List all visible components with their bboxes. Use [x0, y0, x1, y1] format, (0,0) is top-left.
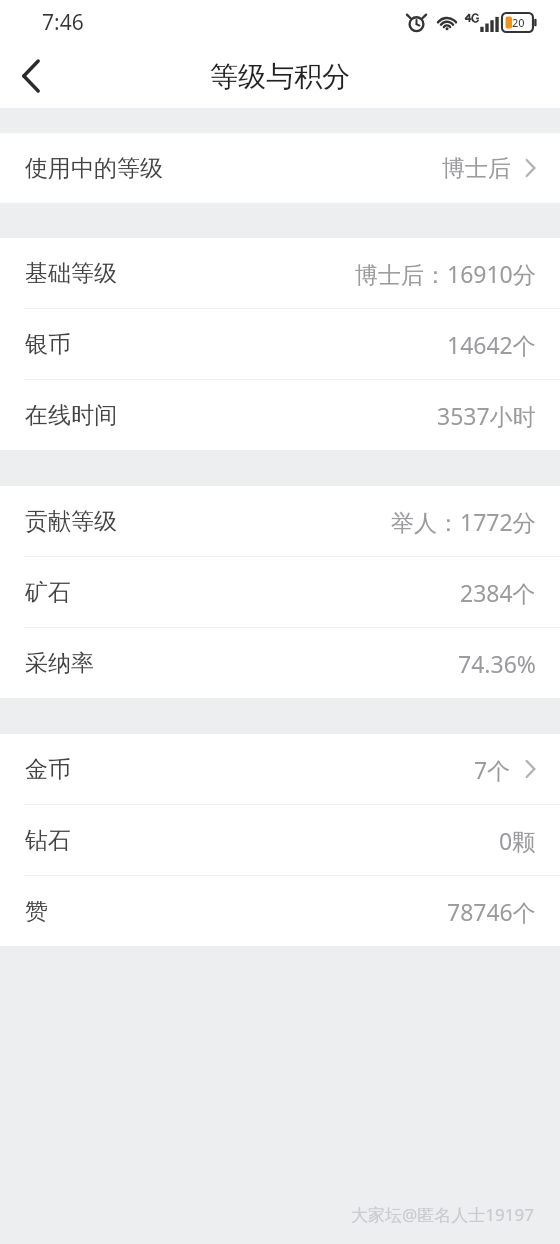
- staticText: 大家坛@匿名人士19197: [351, 1203, 534, 1226]
- button[interactable]: 贡献等级: [0, 486, 560, 556]
- staticText: 钻石: [25, 826, 71, 855]
- staticText: 金币: [25, 755, 71, 784]
- button[interactable]: 使用中的等级: [0, 133, 560, 203]
- button[interactable]: 钻石: [0, 805, 560, 875]
- staticText: 74.36%: [458, 648, 536, 679]
- staticText: 7:46: [42, 8, 84, 37]
- staticText: 7个: [474, 754, 511, 785]
- staticText: 在线时间: [25, 401, 117, 430]
- staticText: 矿石: [25, 578, 71, 607]
- staticText: 14642个: [447, 329, 536, 360]
- staticText: 使用中的等级: [25, 154, 163, 183]
- button[interactable]: 赞: [0, 876, 560, 946]
- staticText: 0颗: [499, 825, 536, 856]
- staticText: 2384个: [460, 577, 536, 608]
- staticText: 贡献等级: [25, 507, 117, 536]
- button[interactable]: 矿石: [0, 557, 560, 627]
- staticText: 采纳率: [25, 649, 94, 678]
- button[interactable]: 银币: [0, 309, 560, 379]
- staticText: 博士后：16910分: [355, 258, 536, 289]
- button[interactable]: 采纳率: [0, 628, 560, 698]
- staticText: 基础等级: [25, 259, 117, 288]
- staticText: 20: [512, 15, 525, 30]
- staticText: 78746个: [447, 896, 536, 927]
- staticText: 等级与积分: [210, 59, 350, 94]
- staticText: 赞: [25, 897, 48, 926]
- staticText: 3537小时: [437, 400, 536, 431]
- button[interactable]: 在线时间: [0, 380, 560, 450]
- staticText: 银币: [25, 330, 71, 359]
- staticText: 举人：1772分: [391, 506, 536, 537]
- button[interactable]: 金币: [0, 734, 560, 804]
- button[interactable]: 基础等级: [0, 238, 560, 308]
- button[interactable]: Back: [0, 45, 62, 107]
- staticText: 博士后: [442, 154, 511, 183]
